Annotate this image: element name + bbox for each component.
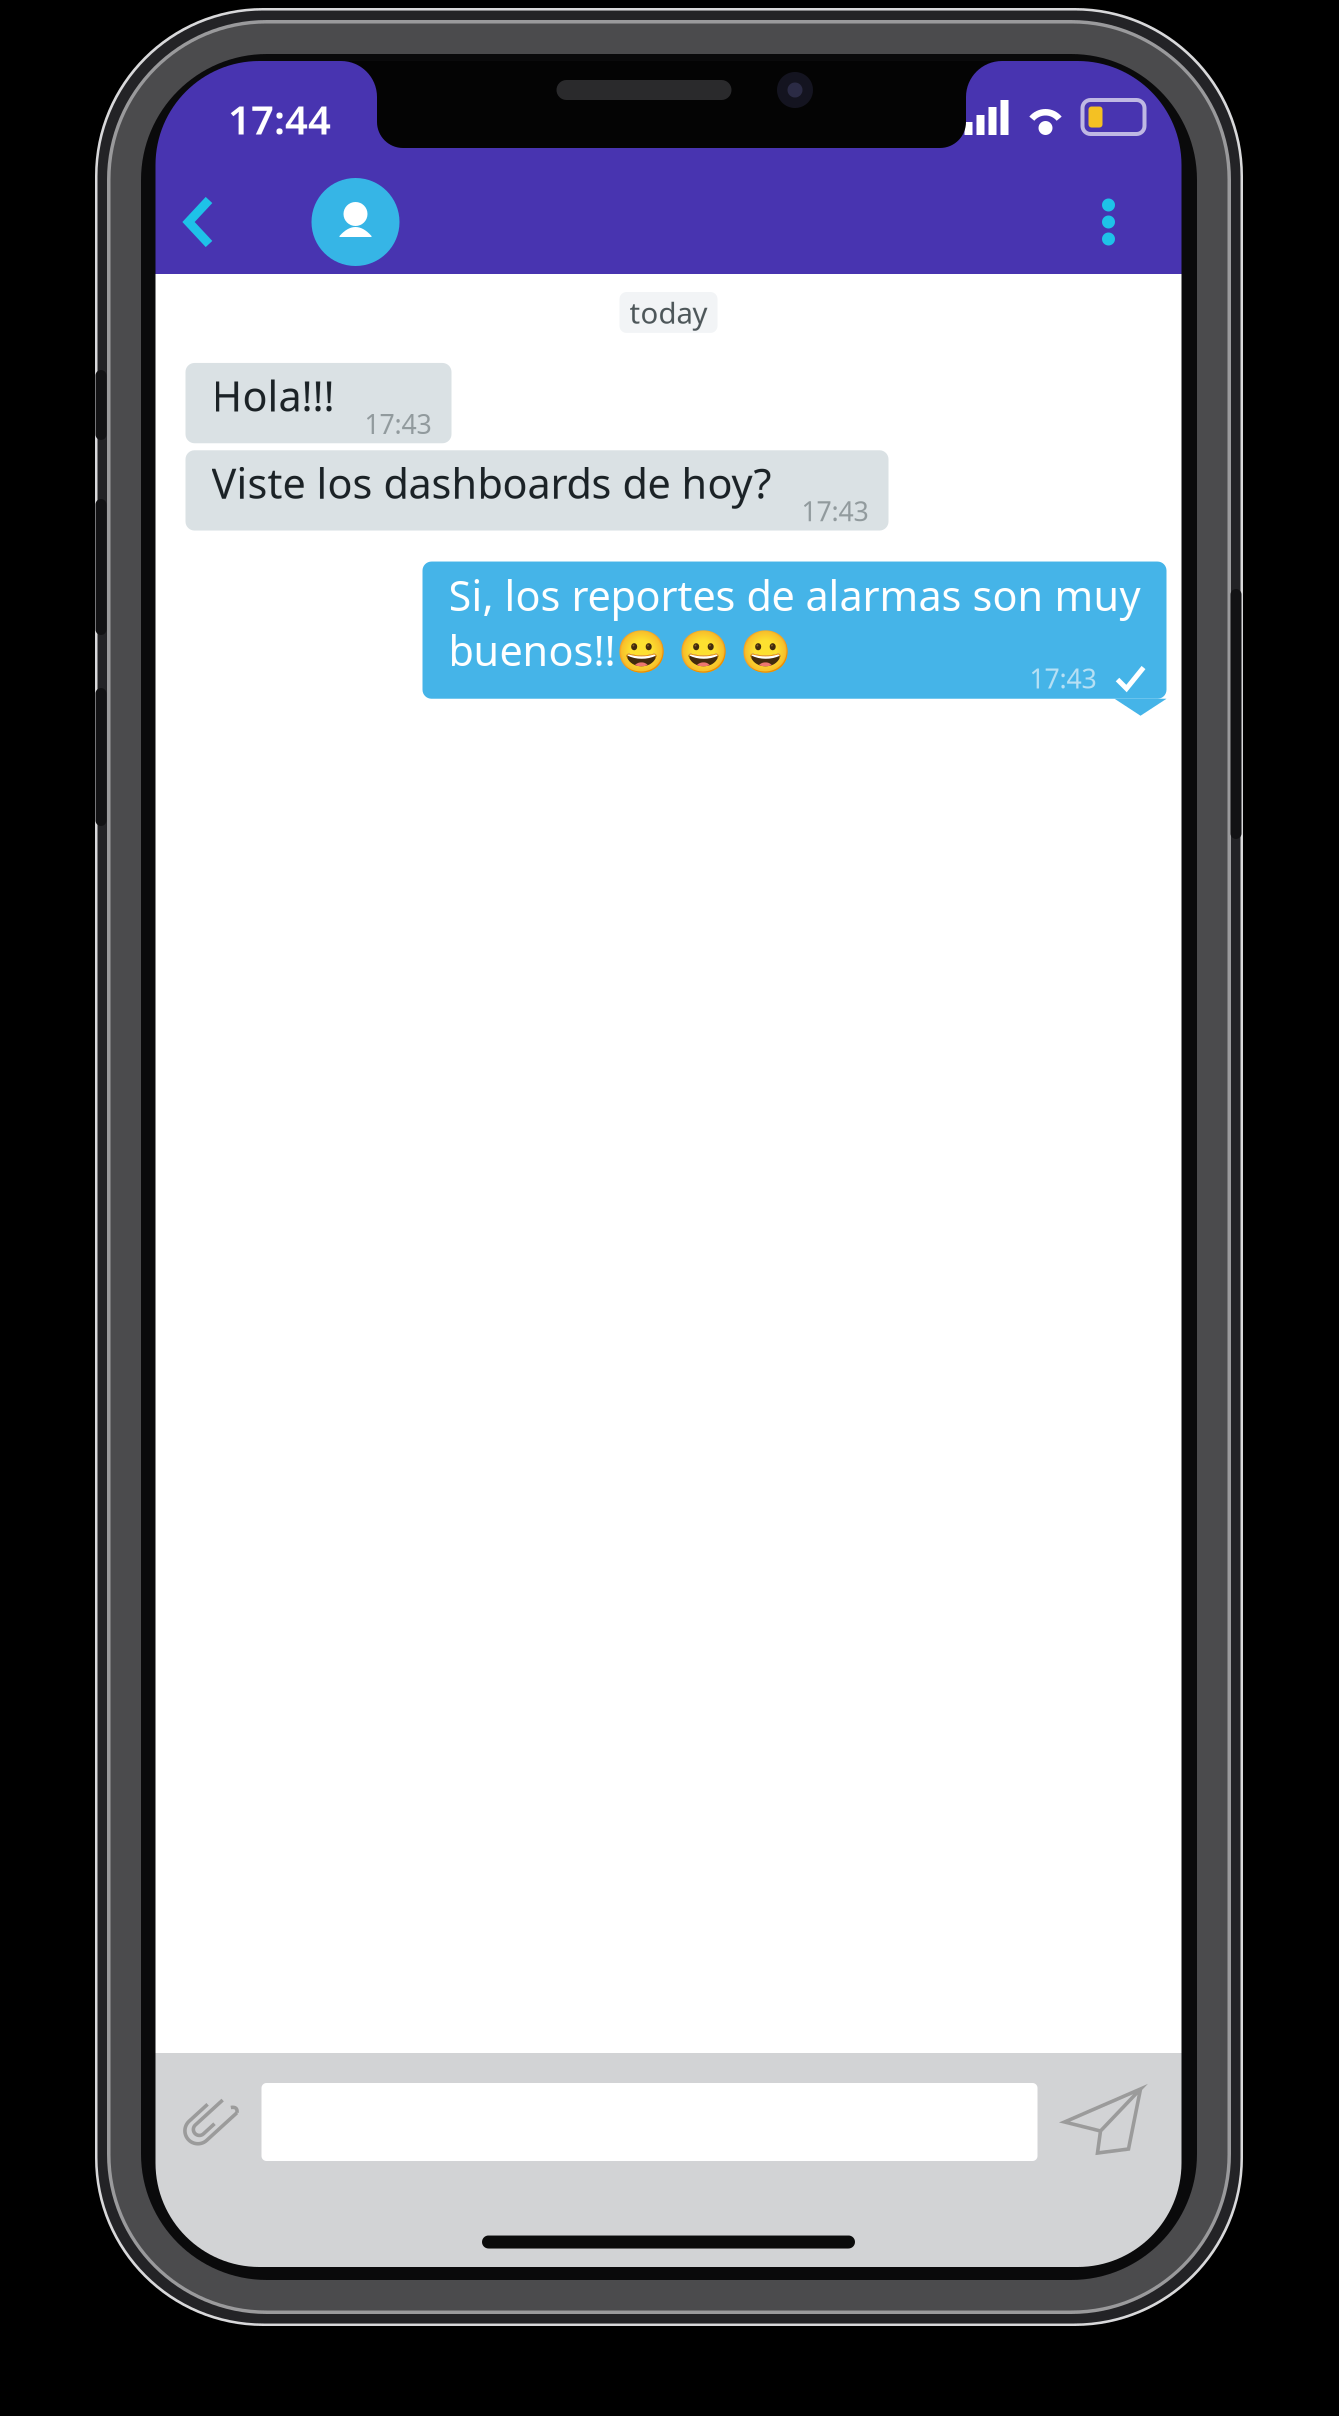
staticText: 17:43 — [364, 406, 431, 441]
staticText: Viste los dashboards de hoy? — [211, 455, 771, 510]
button[interactable]: Send — [1033, 2068, 1173, 2176]
button[interactable]: Attach file — [155, 2068, 259, 2176]
staticText: Hola!!! — [211, 368, 334, 423]
staticText: 17:43 — [801, 493, 868, 528]
staticText: today — [629, 293, 707, 332]
staticText: Si, los reportes de alarmas son muy buen… — [448, 568, 1140, 677]
button[interactable]: Contact profile — [300, 170, 410, 273]
staticText: 17:43 — [1029, 660, 1096, 696]
button[interactable]: More options — [1066, 170, 1150, 273]
staticText: 17:44 — [228, 92, 331, 145]
button[interactable]: Back — [155, 170, 241, 273]
